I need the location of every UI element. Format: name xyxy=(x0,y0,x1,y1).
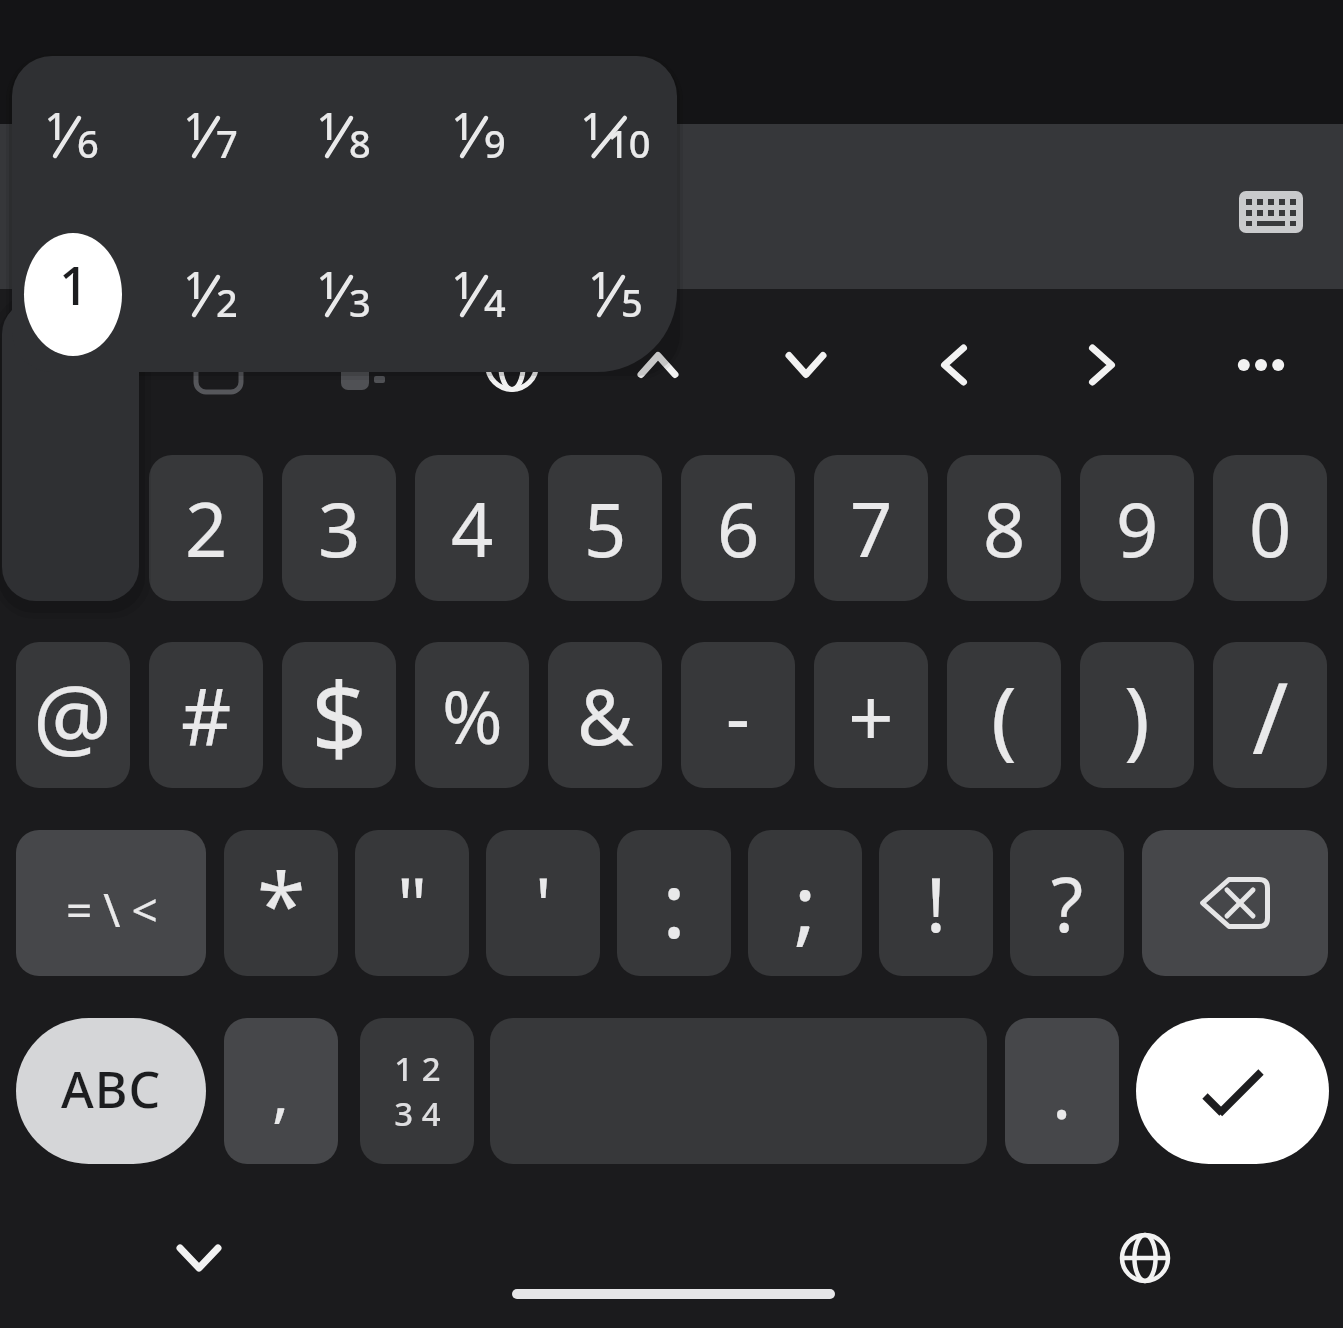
staticText: ? xyxy=(1051,853,1084,954)
button[interactable]: 1 xyxy=(186,113,238,165)
staticText: 1 xyxy=(184,99,206,151)
button[interactable]: ) xyxy=(1080,642,1194,788)
staticText: 8 xyxy=(983,478,1026,579)
staticText: , xyxy=(272,1048,290,1135)
button[interactable]: 0 xyxy=(1213,455,1327,601)
staticText: 1 xyxy=(45,99,67,151)
button[interactable] xyxy=(1136,1018,1329,1164)
button[interactable]: =\< xyxy=(16,830,206,976)
staticText: 0 xyxy=(1249,478,1292,579)
button[interactable]: . xyxy=(1005,1018,1119,1164)
button[interactable] xyxy=(1115,1228,1175,1288)
staticText: : xyxy=(662,842,687,965)
staticText: 7 xyxy=(216,117,238,169)
staticText: 1 xyxy=(452,99,474,151)
staticText: $ xyxy=(311,649,368,782)
staticText: 1 xyxy=(184,258,206,310)
button[interactable]: * xyxy=(224,830,338,976)
staticText: + xyxy=(848,661,894,770)
button[interactable] xyxy=(485,338,539,392)
staticText: 5 xyxy=(621,276,643,328)
staticText: ; xyxy=(794,846,817,960)
button[interactable]: 2 xyxy=(149,455,263,601)
staticText: ( xyxy=(991,657,1017,774)
button[interactable]: 6 xyxy=(681,455,795,601)
button[interactable]: 4 xyxy=(415,455,529,601)
button[interactable]: 1 2 3 4 xyxy=(360,1018,474,1164)
button[interactable]: 1 xyxy=(319,113,371,165)
button[interactable]: 3 xyxy=(282,455,396,601)
staticText: @ xyxy=(33,655,113,775)
button[interactable] xyxy=(1072,335,1132,395)
button[interactable]: ! xyxy=(879,830,993,976)
button[interactable]: ? xyxy=(1010,830,1124,976)
button[interactable]: / xyxy=(1213,642,1327,788)
button[interactable]: ; xyxy=(748,830,862,976)
button[interactable]: 1 xyxy=(454,113,506,165)
staticText: 6 xyxy=(717,478,760,579)
staticText: 1 xyxy=(581,99,603,151)
staticText: 4 xyxy=(484,276,506,328)
button[interactable]: ( xyxy=(947,642,1061,788)
button[interactable] xyxy=(628,335,688,395)
staticText: 5 xyxy=(584,478,627,579)
staticText: # xyxy=(181,662,232,768)
staticText: ! xyxy=(926,853,946,954)
staticText: 1 xyxy=(59,249,89,320)
button[interactable]: 7 xyxy=(814,455,928,601)
button[interactable] xyxy=(194,341,243,394)
button[interactable] xyxy=(169,1228,229,1288)
button[interactable]: 9 xyxy=(1080,455,1194,601)
button[interactable]: 8 xyxy=(947,455,1061,601)
button[interactable]: - xyxy=(681,642,795,788)
button[interactable]: 1 xyxy=(47,113,99,165)
staticText: * xyxy=(257,843,306,963)
button[interactable]: & xyxy=(548,642,662,788)
staticText: 1 xyxy=(452,258,474,310)
button[interactable]: @ xyxy=(16,642,130,788)
staticText: 6 xyxy=(77,117,99,169)
button[interactable]: 1 xyxy=(24,233,122,356)
button[interactable]: 1 xyxy=(186,272,238,324)
staticText: 10 xyxy=(607,117,651,169)
staticText: ) xyxy=(1124,657,1150,774)
button[interactable]: % xyxy=(415,642,529,788)
button[interactable] xyxy=(924,335,984,395)
staticText: 3 xyxy=(318,478,361,579)
staticText: 4 xyxy=(451,478,494,579)
staticText: 8 xyxy=(349,117,371,169)
button[interactable] xyxy=(776,335,836,395)
staticText: 2 xyxy=(216,276,238,328)
staticText: - xyxy=(726,665,750,766)
staticText: 3 xyxy=(349,276,371,328)
button[interactable] xyxy=(1239,191,1303,233)
button[interactable]: : xyxy=(617,830,731,976)
button[interactable] xyxy=(1142,830,1328,976)
button[interactable]: ' xyxy=(486,830,600,976)
button[interactable] xyxy=(338,345,388,393)
button[interactable]: # xyxy=(149,642,263,788)
staticText: ABC xyxy=(61,1055,162,1123)
button[interactable] xyxy=(1231,335,1291,395)
staticText: & xyxy=(577,663,634,768)
button[interactable]: + xyxy=(814,642,928,788)
staticText: =\< xyxy=(66,878,169,941)
button[interactable]: 1 xyxy=(583,113,651,165)
staticText: ' xyxy=(535,853,552,954)
button[interactable]: $ xyxy=(282,642,396,788)
staticText: 9 xyxy=(1116,478,1159,579)
staticText: " xyxy=(397,853,428,954)
button[interactable]: 1 xyxy=(454,272,506,324)
button[interactable]: 1 xyxy=(591,272,643,324)
button[interactable]: 5 xyxy=(548,455,662,601)
button[interactable]: " xyxy=(355,830,469,976)
button[interactable]: 1 xyxy=(319,272,371,324)
button[interactable]: , xyxy=(224,1018,338,1164)
staticText: / xyxy=(1252,649,1289,782)
staticText: 2 xyxy=(185,478,228,579)
button[interactable]: ABC xyxy=(16,1018,206,1164)
staticText: 9 xyxy=(484,117,506,169)
